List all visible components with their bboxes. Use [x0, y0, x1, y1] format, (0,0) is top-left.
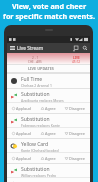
button[interactable]: Agree [40, 131, 57, 136]
staticText: Applaud [16, 156, 31, 161]
button[interactable]: Agree [40, 106, 57, 111]
staticText: Disagree [69, 106, 85, 111]
staticText: Applaud [16, 131, 31, 136]
staticText: Live Stream [17, 45, 44, 52]
button[interactable]: Search [80, 43, 90, 53]
button[interactable]: Substitution [7, 164, 90, 182]
button[interactable]: Disagree [64, 131, 86, 136]
staticText: Full Time [21, 76, 43, 83]
staticText: Agree [45, 131, 56, 136]
staticText: Kante (Chelsea) booked [21, 148, 59, 153]
button[interactable]: Substitution [7, 89, 90, 113]
button[interactable]: Open navigation menu [7, 43, 17, 53]
staticText: Substitution [21, 91, 50, 98]
staticText: Willian replaces Pedro [21, 173, 57, 178]
staticText: LIVE UPDATES [28, 66, 54, 71]
staticText: Substitution [21, 116, 50, 123]
staticText: LIVE [73, 56, 80, 60]
staticText: for specific match events. [0, 11, 98, 21]
button[interactable]: Full Time [7, 74, 90, 88]
button[interactable]: Disagree [64, 106, 86, 111]
staticText: View, vote and cheer [0, 1, 98, 11]
button[interactable]: Agree [40, 156, 57, 161]
button[interactable]: Applaud [11, 156, 32, 161]
staticText: Agree [45, 156, 56, 161]
staticText: CHE - ARS [28, 60, 42, 64]
staticText: Substitution [21, 166, 50, 173]
button[interactable]: Applaud [11, 131, 32, 136]
staticText: Applaud [16, 106, 31, 111]
staticText: Disagree [69, 131, 85, 136]
staticText: 45:12 [72, 60, 81, 64]
staticText: Agree [45, 106, 56, 111]
button[interactable]: Cast to device [70, 43, 80, 53]
staticText: Fabregas replaces Kante [21, 123, 60, 128]
staticText: Disagree [69, 156, 85, 161]
button[interactable]: Disagree [64, 156, 86, 161]
button[interactable]: Substitution [7, 114, 90, 138]
staticText: Azpilicueta replaces Moses [21, 98, 64, 103]
button[interactable]: LIVE UPDATES [7, 65, 90, 72]
staticText: Yellow Card [21, 141, 49, 148]
staticText: Chelsea 2 Arsenal 1 [21, 83, 52, 88]
staticText: 2 - 1 [32, 56, 39, 60]
button[interactable]: Applaud [11, 106, 32, 111]
button[interactable]: Yellow Card [7, 139, 90, 163]
